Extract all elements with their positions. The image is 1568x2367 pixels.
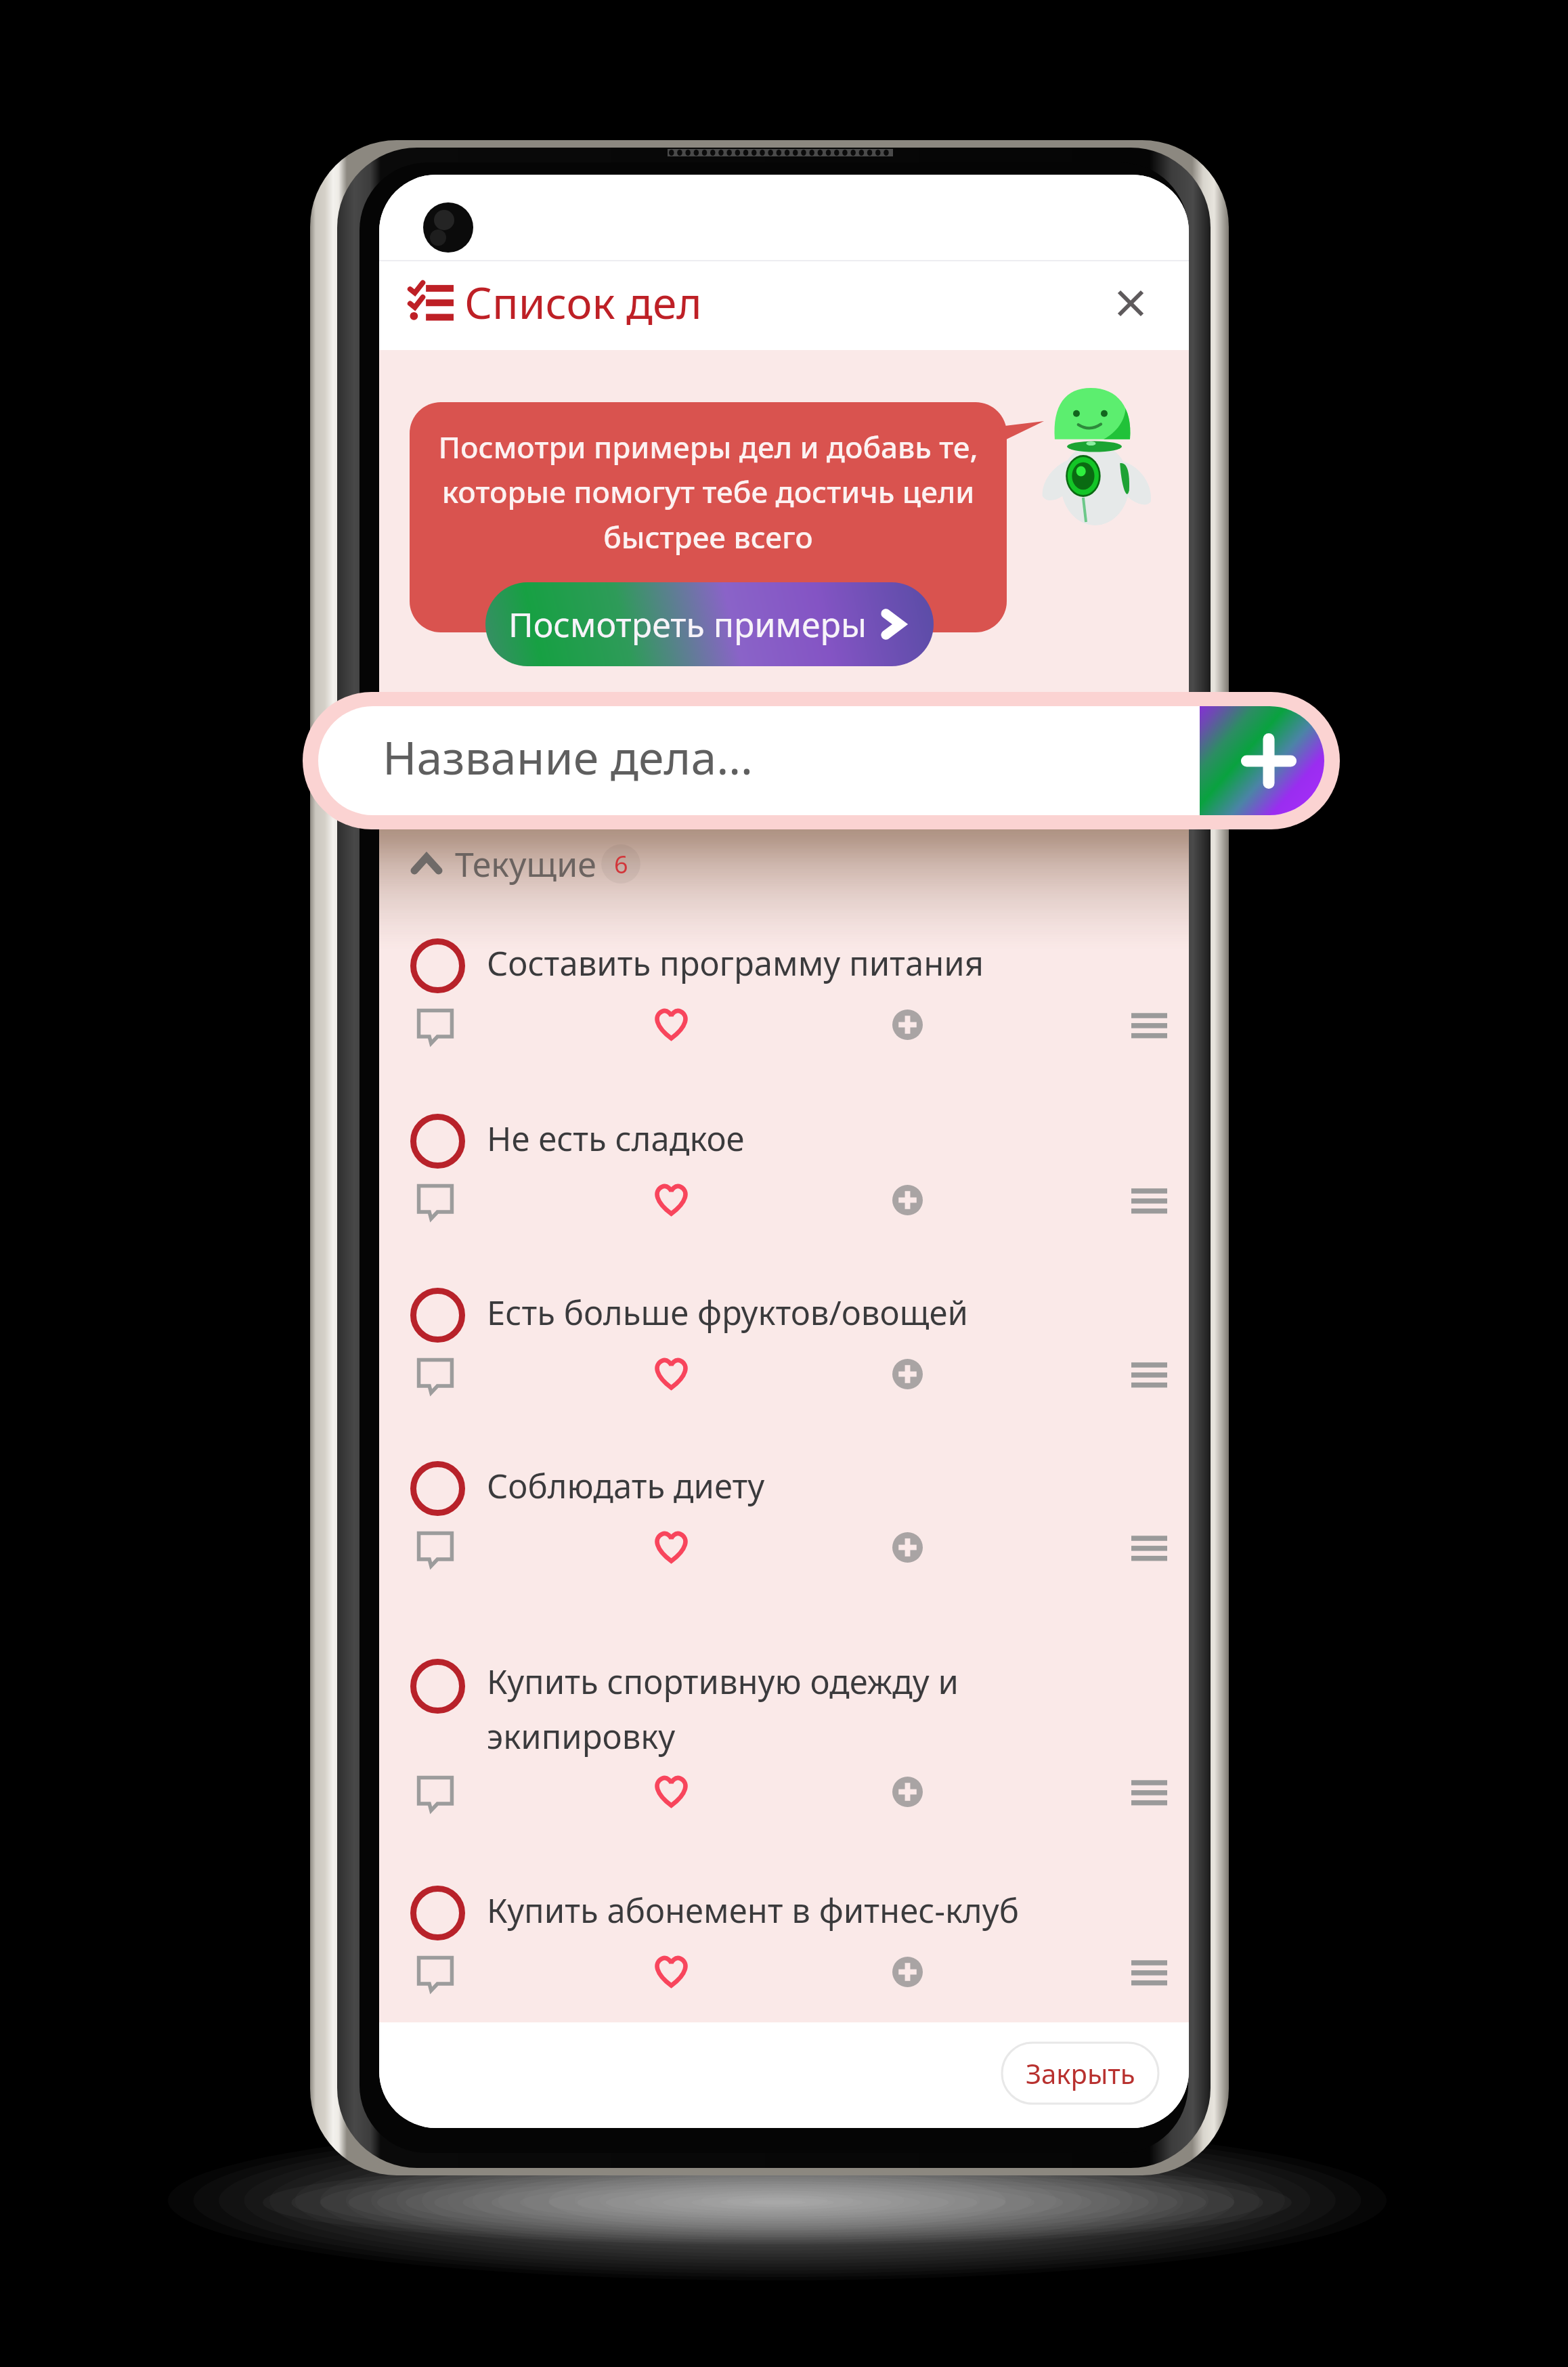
staticText: Составить программу питания [487,940,1171,986]
button[interactable]: Add task [1200,706,1324,815]
button[interactable]: Add [881,1350,934,1397]
staticText: 6 [614,848,628,881]
button[interactable]: Add [881,1523,934,1571]
button[interactable]: Купить абонемент в фитнес-клуб [379,1884,1189,2001]
button[interactable]: Reorder [1123,1176,1175,1223]
staticText: Закрыть [1026,2055,1135,2091]
staticText: Список дел [464,273,702,332]
button[interactable]: Like [645,1523,697,1571]
button[interactable]: Comment [409,1001,462,1048]
button[interactable]: Посмотреть примеры [485,582,934,666]
staticText: Посмотреть примеры [508,601,867,647]
button[interactable]: Купить спортивную одежду и экипировку [379,1657,1189,1813]
button[interactable]: Like [645,1001,697,1048]
staticText: Название дела… [383,725,754,788]
button[interactable]: Reorder [1123,1948,1175,1995]
button[interactable]: Соблюдать диету [379,1460,1189,1576]
staticText: Соблюдать диету [487,1463,1171,1508]
button[interactable]: Like [645,1350,697,1397]
button[interactable]: Не есть сладкое [379,1112,1189,1229]
button[interactable]: Закрыть [1002,2043,1158,2104]
button[interactable]: Add [881,1948,934,1995]
staticText: Купить спортивную одежду и экипировку [487,1659,1171,1758]
button[interactable]: Есть больше фруктов/овощей [379,1286,1189,1403]
staticText: Не есть сладкое [487,1116,1171,1161]
button[interactable]: Reorder [1123,1001,1175,1048]
staticText: Текущие [455,841,596,887]
button[interactable]: Reorder [1123,1523,1175,1571]
button[interactable]: Comment [409,1350,462,1397]
button[interactable]: Comment [409,1176,462,1223]
staticText: Посмотри примеры дел и добавь те, которы… [410,427,1007,557]
button[interactable]: Close [1098,271,1163,336]
button[interactable]: Like [645,1948,697,1995]
button[interactable]: Add [881,1768,934,1815]
button[interactable]: Comment [409,1768,462,1815]
button[interactable]: Add [881,1001,934,1048]
button[interactable]: Reorder [1123,1350,1175,1397]
button[interactable]: Like [645,1768,697,1815]
button[interactable]: Like [645,1176,697,1223]
button[interactable]: Посмотри примеры дел и добавь те, которы… [410,402,1007,632]
button[interactable]: Comment [409,1948,462,1995]
button[interactable]: Reorder [1123,1768,1175,1815]
button[interactable]: Comment [409,1523,462,1571]
staticText: Купить абонемент в фитнес-клуб [487,1888,1171,1933]
button[interactable]: Составить программу питания [379,937,1189,1054]
staticText: Есть больше фруктов/овощей [487,1290,1171,1335]
button[interactable]: Add [881,1176,934,1223]
